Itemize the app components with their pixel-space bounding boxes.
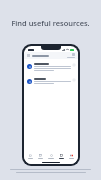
staticText: Find useful resources. [11, 18, 90, 28]
button[interactable]: Tab 2 [37, 153, 44, 160]
button[interactable]: Tab 4 [58, 153, 65, 160]
button[interactable]: Account [72, 53, 75, 56]
button[interactable]: Open link [24, 77, 78, 86]
button[interactable]: Tab 5 [68, 153, 75, 160]
button[interactable]: Open link [24, 62, 78, 73]
button[interactable]: Tab 1 [27, 153, 34, 160]
button[interactable]: Tab 3 [47, 153, 55, 160]
